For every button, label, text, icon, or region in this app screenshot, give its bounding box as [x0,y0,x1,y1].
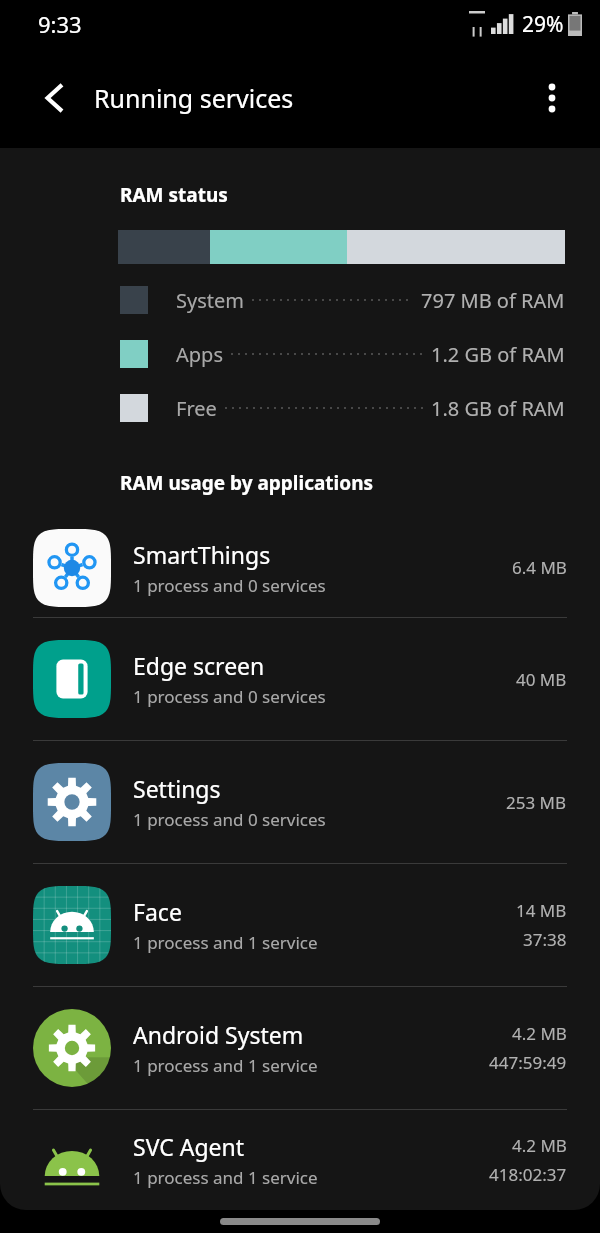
staticText: Android System [133,1019,304,1050]
staticText: 6.4 MB [512,556,567,579]
staticText: 797 MB of RAM [421,287,565,314]
staticText: 4.2 MB [512,1022,567,1045]
button[interactable]: Settings [0,741,600,863]
staticText: 1.8 GB of RAM [431,395,565,422]
staticText: 1 process and 0 services [133,685,326,708]
staticText: 1 process and 1 service [133,1054,318,1077]
staticText: System [176,287,244,314]
staticText: Face [133,896,182,927]
staticText: RAM usage by applications [120,470,374,496]
button[interactable]: SmartThings [0,518,600,617]
staticText: 37:38 [523,928,567,951]
staticText: 14 MB [516,899,567,922]
staticText: SmartThings [133,539,271,570]
staticText: 447:59:49 [489,1051,567,1074]
button[interactable]: SVC Agent [0,1110,600,1210]
staticText: Free [176,395,217,422]
staticText: 1 process and 0 services [133,574,326,597]
staticText: 9:33 [38,9,82,39]
staticText: Settings [133,773,221,804]
button[interactable]: Edge screen [0,618,600,740]
staticText: 40 MB [516,668,567,691]
staticText: RAM status [120,182,228,208]
staticText: Edge screen [133,650,265,681]
staticText: Apps [176,341,223,368]
staticText: 1 process and 1 service [133,1166,318,1189]
staticText: 29% [522,10,564,39]
staticText: 1 process and 1 service [133,931,318,954]
staticText: 418:02:37 [489,1163,567,1186]
button[interactable]: Face [0,864,600,986]
staticText: 1 process and 0 services [133,808,326,831]
button[interactable]: Android System [0,987,600,1109]
staticText: 1.2 GB of RAM [431,341,565,368]
staticText: SVC Agent [133,1131,245,1162]
button[interactable]: More options [526,72,578,124]
staticText: Running services [94,81,294,115]
button[interactable]: Back [26,70,82,126]
staticText: 4.2 MB [512,1134,567,1157]
staticText: 253 MB [506,791,567,814]
